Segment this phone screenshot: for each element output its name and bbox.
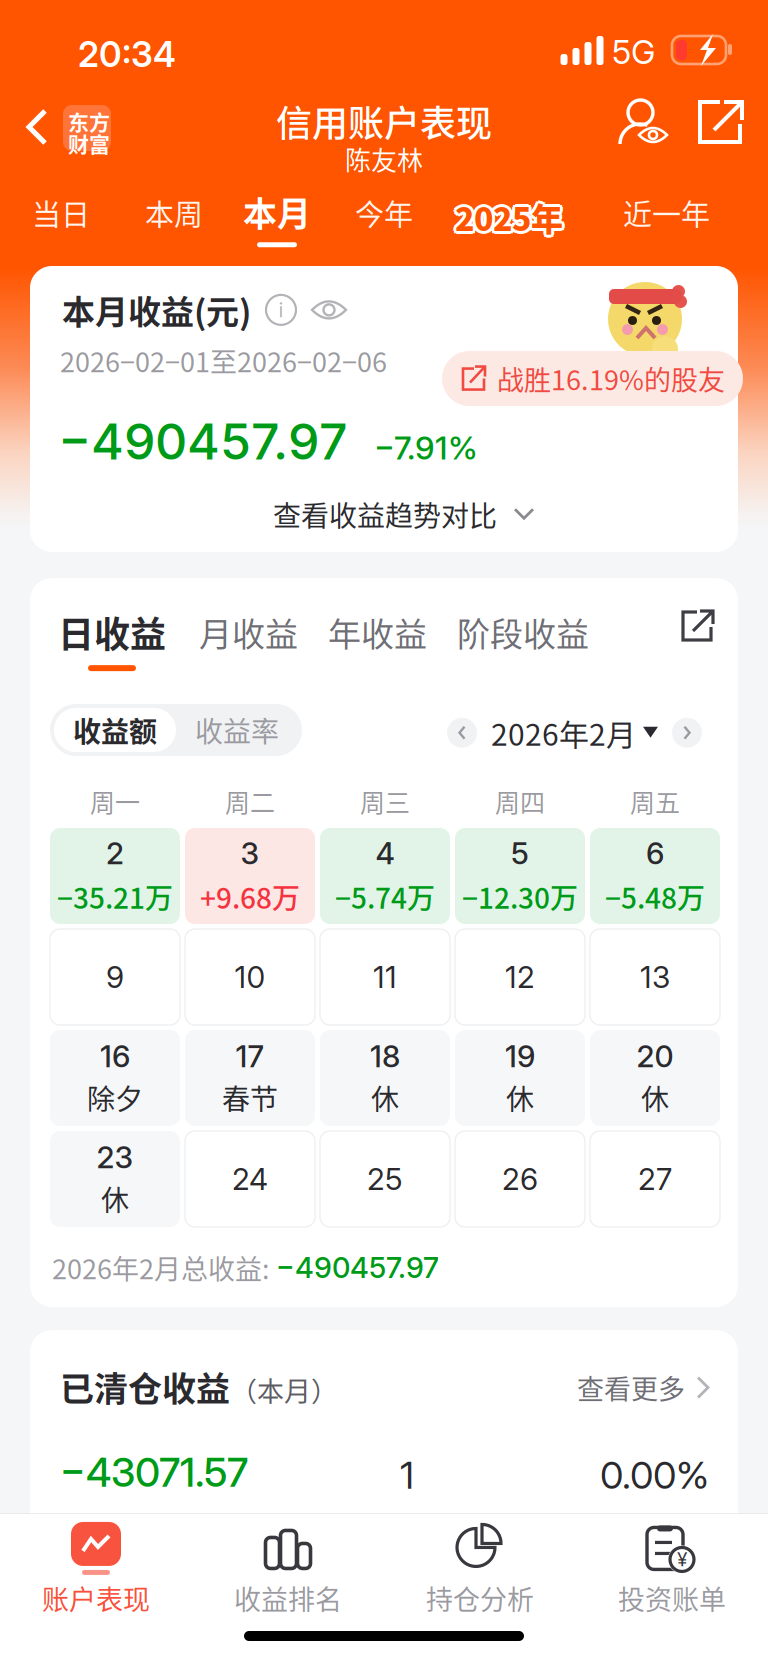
button[interactable]: Back — [20, 100, 117, 156]
button[interactable]: 战胜16.19%的股友 — [442, 351, 743, 406]
button[interactable]: 23 — [50, 1131, 180, 1227]
button[interactable]: 2 — [50, 828, 180, 924]
staticText: 3 — [240, 835, 259, 871]
staticText: −5.74万 — [335, 876, 435, 917]
button[interactable]: 3 — [185, 828, 315, 924]
button[interactable]: Account — [620, 98, 672, 148]
button[interactable]: Hide amount — [311, 295, 347, 325]
button[interactable]: 收益率 — [176, 708, 298, 752]
staticText: 18 — [370, 1038, 400, 1074]
button[interactable]: 年收益 — [328, 608, 427, 669]
staticText: 本月收益(元) — [62, 286, 251, 334]
button[interactable]: Info — [265, 294, 297, 326]
button[interactable]: 25 — [320, 1131, 450, 1227]
button[interactable]: 账户表现 — [0, 1523, 192, 1619]
button[interactable]: 2025年 — [447, 186, 571, 248]
button[interactable]: 本月 — [233, 183, 321, 251]
staticText: 阶段收益 — [457, 608, 589, 656]
staticText: 2025年 — [453, 192, 561, 238]
button[interactable]: 17 — [185, 1030, 315, 1126]
button[interactable]: 月收益 — [199, 608, 298, 669]
staticText: 查看更多 — [577, 1368, 685, 1407]
button[interactable]: 本周 — [135, 188, 213, 249]
button[interactable]: 当日 — [22, 188, 100, 249]
staticText: 2026年2月总收益: — [52, 1248, 276, 1287]
staticText: 今年 — [355, 192, 413, 234]
button[interactable]: 收益排名 — [192, 1523, 384, 1619]
staticText: 2025年 — [458, 194, 566, 240]
button[interactable]: 18 — [320, 1030, 450, 1126]
button[interactable]: 10 — [185, 929, 315, 1025]
staticText: 5G — [612, 32, 655, 72]
staticText: 财富 — [68, 128, 110, 158]
button[interactable]: Next month — [672, 718, 702, 748]
button[interactable]: 日收益 — [58, 606, 166, 671]
staticText: 2025年 — [457, 196, 565, 242]
staticText: 25 — [367, 1161, 403, 1197]
staticText: 2025年 — [453, 196, 561, 242]
button[interactable]: Share — [696, 98, 746, 148]
button[interactable]: 13 — [590, 929, 720, 1025]
staticText: 24 — [232, 1161, 268, 1197]
staticText: 近一年 — [623, 192, 710, 234]
button[interactable]: 阶段收益 — [457, 608, 589, 669]
button[interactable]: 2026年2月 — [491, 711, 658, 754]
staticText: 本周 — [145, 192, 203, 234]
staticText: 投资账单 — [618, 1578, 726, 1618]
button[interactable]: 收益额 — [54, 708, 176, 752]
button[interactable]: 持仓分析 — [384, 1523, 576, 1619]
button[interactable]: 查看收益趋势对比 — [273, 484, 535, 544]
button[interactable]: 6 — [590, 828, 720, 924]
button[interactable]: 19 — [455, 1030, 585, 1126]
button[interactable]: 5 — [455, 828, 585, 924]
staticText: 2025年 — [455, 197, 563, 243]
staticText: 26 — [502, 1161, 538, 1197]
staticText: 23 — [96, 1139, 133, 1175]
staticText: −7.91% — [374, 428, 478, 467]
staticText: 1 — [400, 1452, 414, 1498]
button[interactable]: 16 — [50, 1030, 180, 1126]
staticText: 周二 — [225, 783, 275, 819]
staticText: −43071.57 — [60, 1448, 248, 1496]
staticText: 收益额 — [73, 710, 157, 750]
button[interactable]: 24 — [185, 1131, 315, 1227]
staticText: 休 — [506, 1077, 534, 1118]
staticText: 12 — [505, 959, 535, 995]
staticText: −5.48万 — [605, 876, 705, 917]
button[interactable]: 11 — [320, 929, 450, 1025]
staticText: 除夕 — [87, 1077, 143, 1118]
staticText: 0.00% — [600, 1452, 709, 1498]
button[interactable]: 27 — [590, 1131, 720, 1227]
button[interactable]: Previous month — [447, 718, 477, 748]
button[interactable]: 近一年 — [613, 188, 720, 249]
button[interactable]: 26 — [455, 1131, 585, 1227]
button[interactable]: Share — [680, 608, 718, 646]
staticText: 本月 — [243, 187, 311, 236]
button[interactable]: ¥ — [576, 1523, 768, 1619]
staticText: 日收益 — [58, 606, 166, 658]
staticText: 5 — [511, 835, 529, 871]
staticText: 信用账户表现 — [276, 95, 492, 147]
staticText: 休 — [101, 1178, 129, 1219]
staticText: 周三 — [360, 783, 410, 819]
staticText: 东方 — [68, 106, 110, 136]
staticText: 周五 — [630, 783, 680, 819]
staticText: 4 — [375, 835, 394, 871]
staticText: 2025年 — [452, 194, 560, 240]
button[interactable]: 20 — [590, 1030, 720, 1126]
staticText: 20 — [636, 1038, 673, 1074]
button[interactable]: 查看更多 — [577, 1368, 711, 1407]
staticText: 周一 — [90, 783, 140, 819]
staticText: 19 — [505, 1038, 535, 1074]
button[interactable]: 9 — [50, 929, 180, 1025]
staticText: ¥ — [677, 1548, 687, 1571]
staticText: 2 — [106, 835, 124, 871]
staticText: 10 — [234, 959, 265, 995]
staticText: 休 — [371, 1077, 399, 1118]
staticText: 周四 — [495, 783, 545, 819]
button[interactable]: 12 — [455, 929, 585, 1025]
button[interactable]: 今年 — [345, 188, 423, 249]
button[interactable]: 4 — [320, 828, 450, 924]
staticText: 2026年2月 — [491, 711, 636, 754]
staticText: 已清仓收益 — [60, 1362, 230, 1411]
